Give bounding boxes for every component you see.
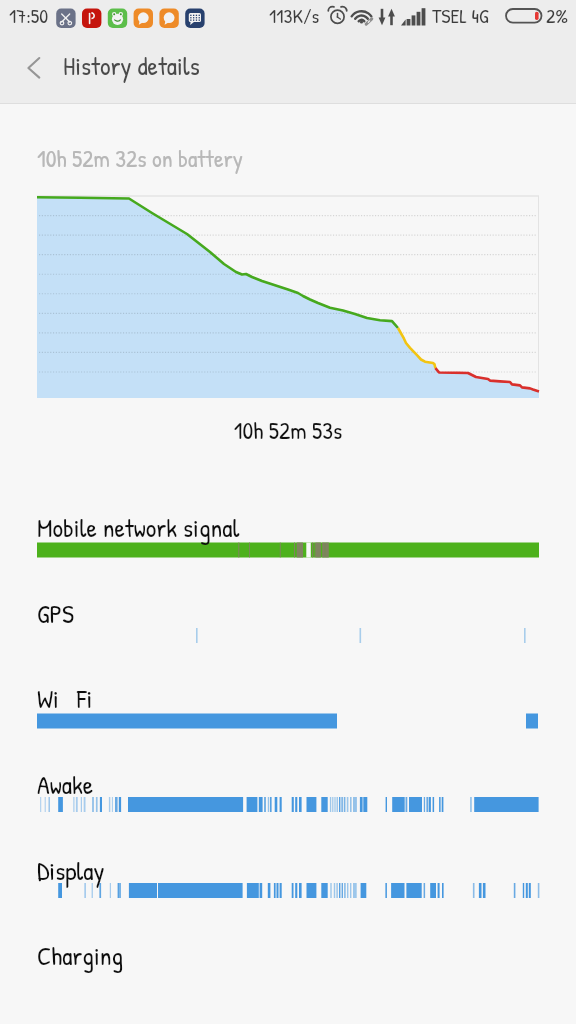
staticText: GPS — [37, 596, 74, 631]
staticText: Wi Fi — [37, 681, 93, 716]
staticText: 17:50 — [9, 2, 49, 29]
staticText: Mobile network signal — [37, 510, 240, 545]
staticText: 10h 52m 53s — [0, 414, 576, 446]
staticText: 2% — [546, 2, 569, 29]
staticText: History details — [63, 48, 200, 83]
staticText: 10h 52m 32s on battery — [37, 142, 243, 174]
staticText: Awake — [37, 767, 94, 802]
button[interactable]: Back — [12, 44, 60, 92]
staticText: TSEL 4G — [432, 2, 489, 29]
staticText: Display — [37, 853, 105, 888]
staticText: 113K/s — [269, 2, 320, 29]
staticText: Charging — [37, 938, 124, 973]
